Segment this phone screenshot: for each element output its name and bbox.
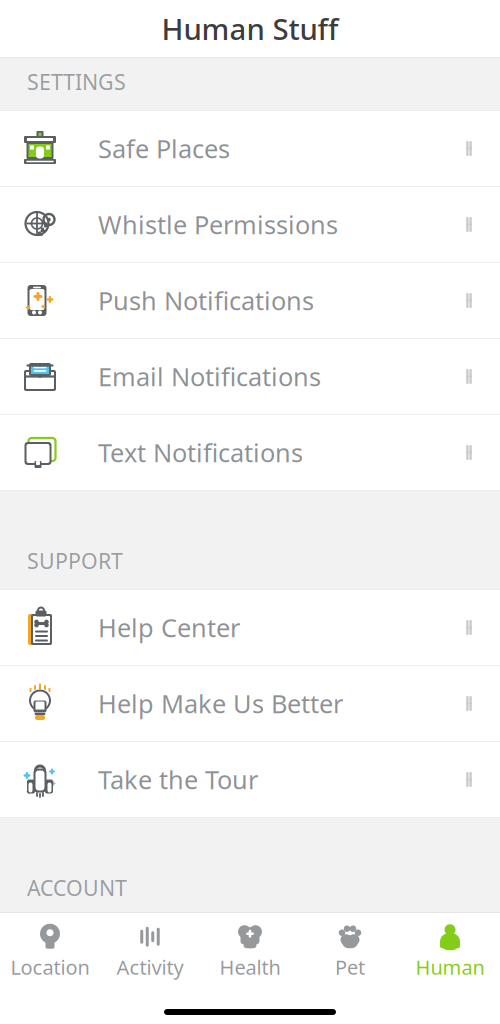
staticText: Text Notifications: [98, 436, 303, 469]
staticText: Whistle Permissions: [98, 208, 338, 241]
staticText: Safe Places: [98, 132, 230, 165]
staticText: Take the Tour: [98, 763, 258, 796]
staticText: SUPPORT: [27, 547, 123, 575]
staticText: Push Notifications: [98, 284, 314, 317]
button[interactable]: Human: [400, 921, 500, 983]
staticText: Location: [10, 954, 89, 980]
button[interactable]: Text Notifications: [0, 415, 500, 491]
staticText: SETTINGS: [27, 68, 126, 96]
button[interactable]: Push Notifications: [0, 263, 500, 339]
staticText: Human Stuff: [161, 9, 338, 48]
button[interactable]: Take the Tour: [0, 742, 500, 818]
button[interactable]: Pet: [300, 921, 400, 983]
button[interactable]: Safe Places: [0, 111, 500, 187]
staticText: ACCOUNT: [27, 874, 127, 902]
button[interactable]: Email Notifications: [0, 339, 500, 415]
staticText: Help Make Us Better: [98, 687, 343, 720]
button[interactable]: Activity: [100, 921, 200, 983]
staticText: Help Center: [98, 611, 240, 644]
staticText: Health: [219, 954, 280, 980]
staticText: Profile: [98, 938, 174, 971]
button[interactable]: Profile: [0, 917, 500, 993]
button[interactable]: Help Center: [0, 590, 500, 666]
button[interactable]: Whistle Permissions: [0, 187, 500, 263]
staticText: Email Notifications: [98, 360, 321, 393]
button[interactable]: Health: [200, 921, 300, 983]
button[interactable]: Help Make Us Better: [0, 666, 500, 742]
staticText: Activity: [116, 954, 183, 980]
staticText: Pet: [335, 954, 365, 980]
button[interactable]: Location: [0, 921, 100, 983]
staticText: Human: [415, 954, 484, 980]
